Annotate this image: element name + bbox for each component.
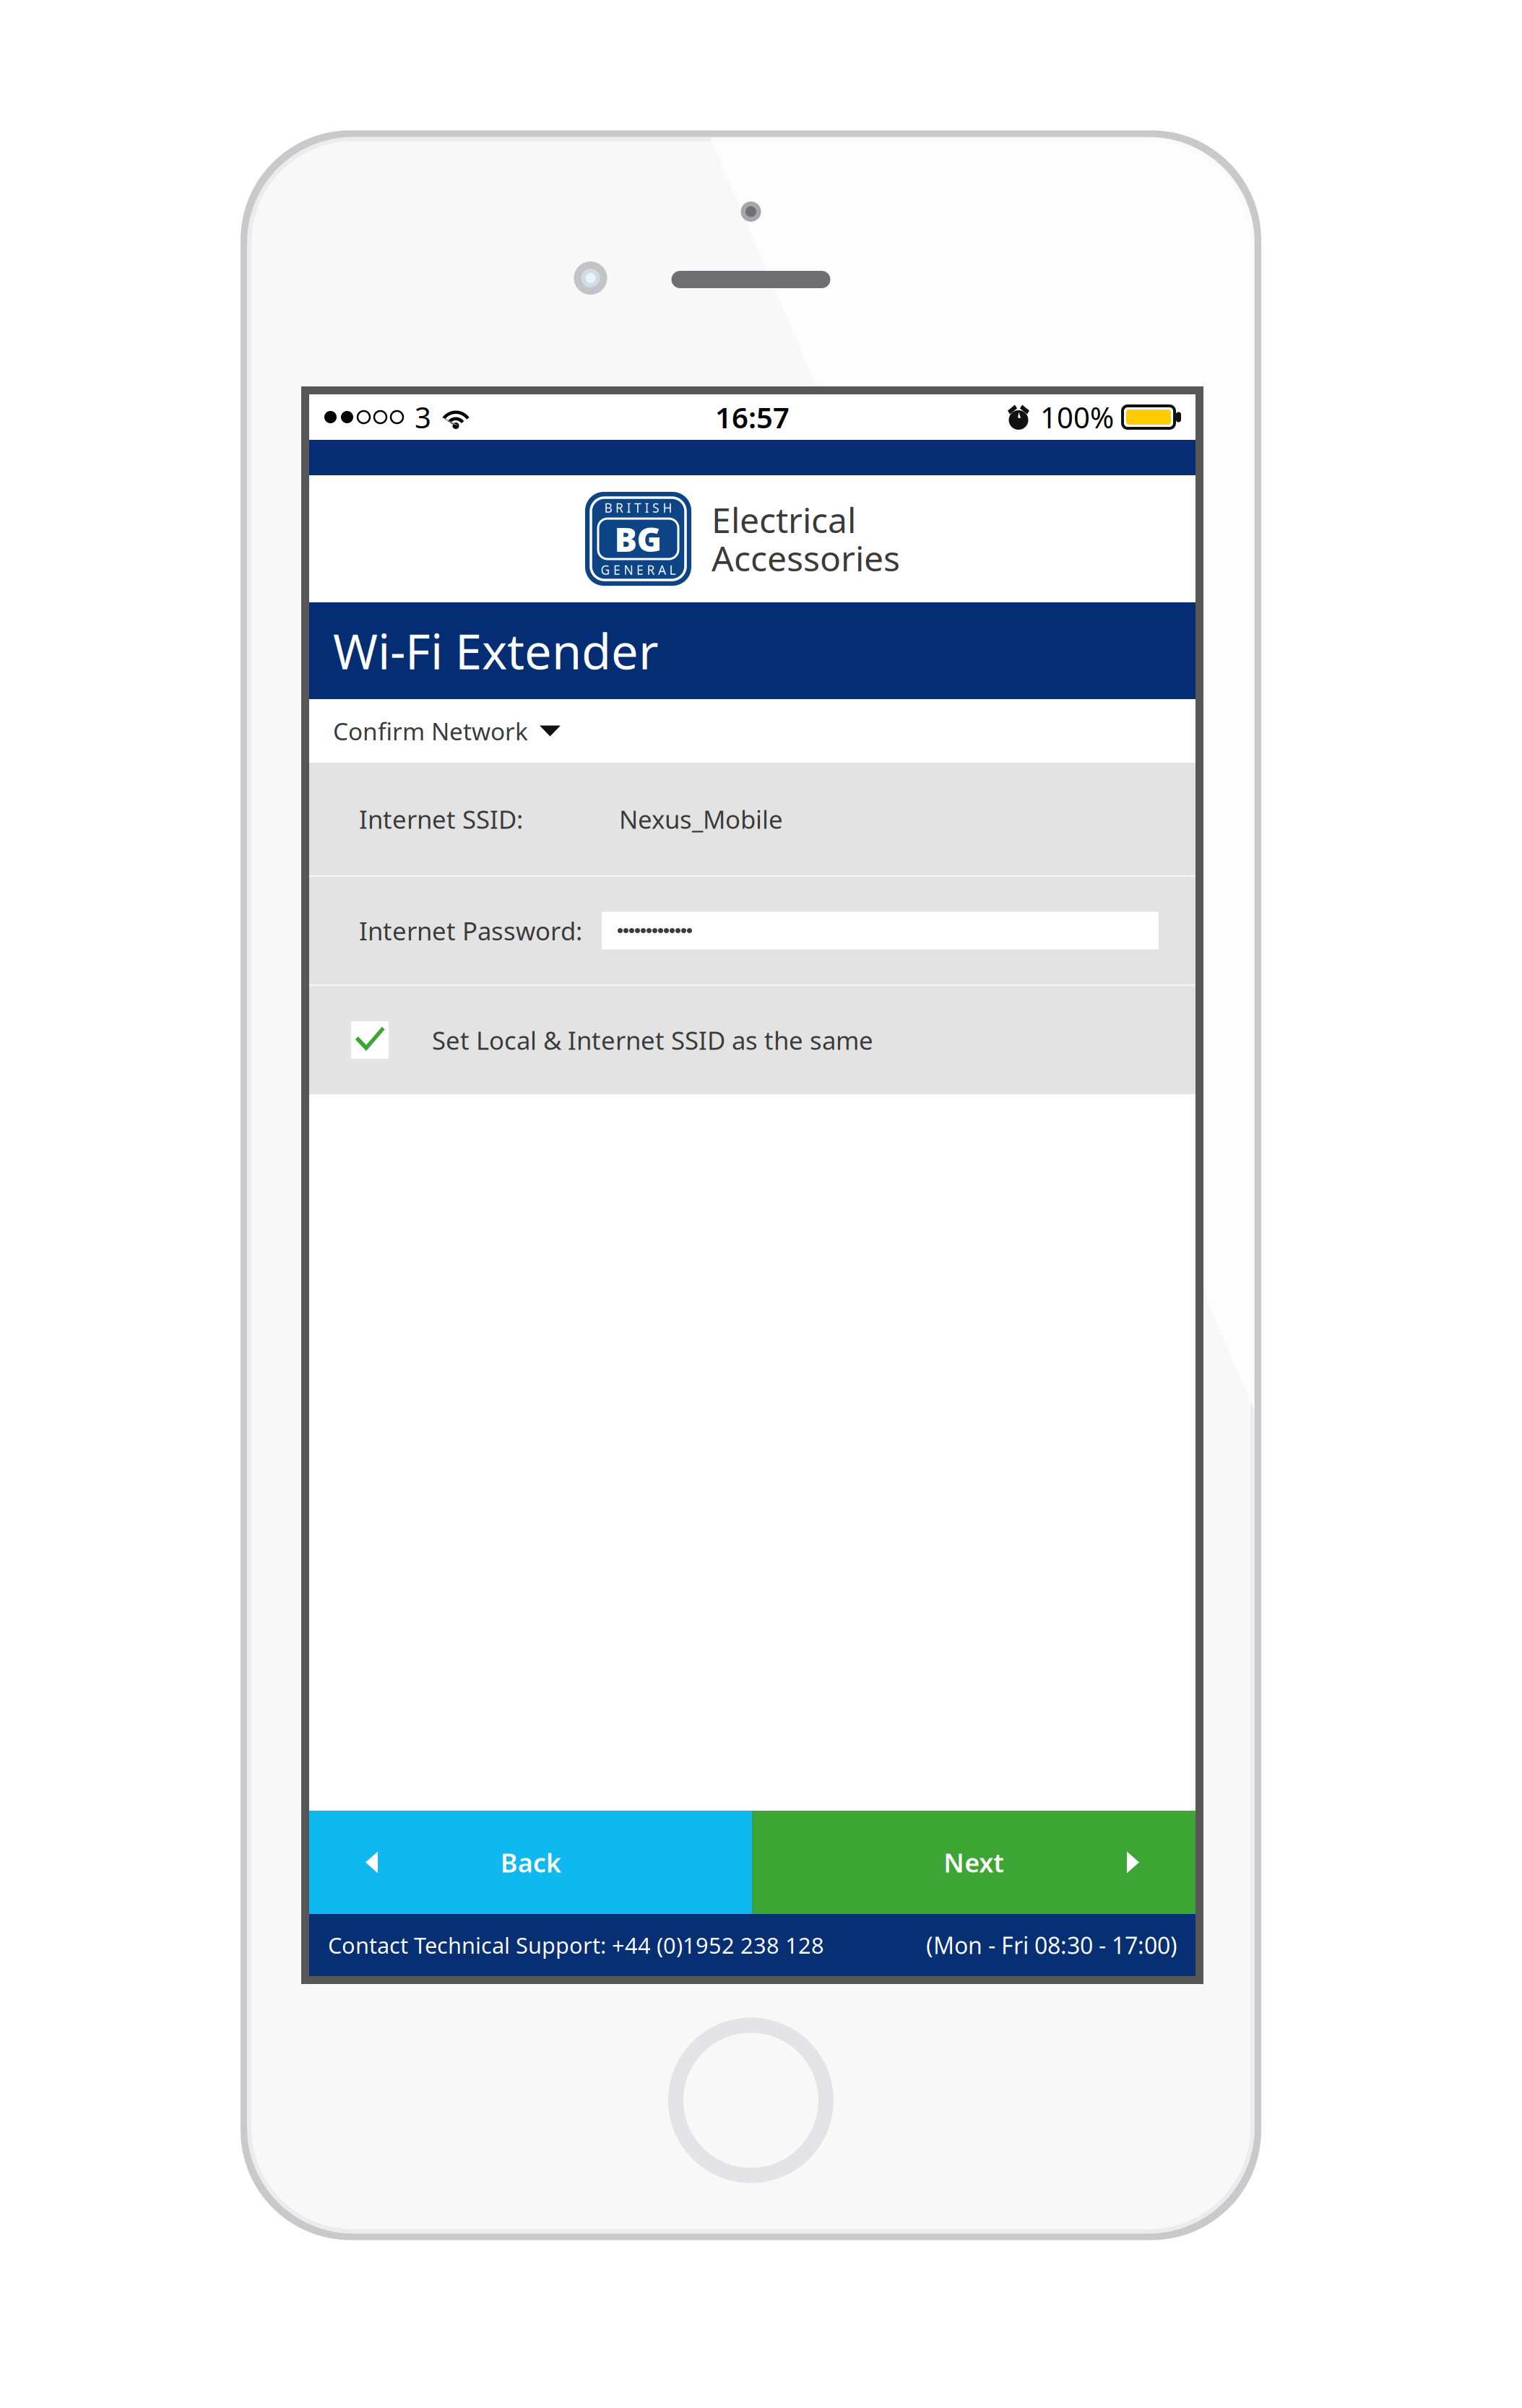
staticText: 3: [415, 398, 431, 436]
staticText: Wi-Fi Extender: [333, 619, 659, 683]
staticText: A: [658, 562, 666, 578]
staticText: Accessories: [712, 535, 900, 581]
staticText: Confirm Network: [333, 715, 528, 747]
staticText: H: [663, 499, 672, 516]
staticText: I: [645, 499, 649, 516]
button[interactable]: Next: [752, 1811, 1195, 1914]
staticText: Internet SSID:: [359, 802, 523, 836]
staticText: 100%: [1040, 398, 1114, 436]
staticText: Internet Password:: [359, 914, 582, 947]
staticText: I: [627, 499, 631, 516]
staticText: 16:57: [715, 398, 790, 436]
staticText: Contact Technical Support: +44 (0)1952 2…: [328, 1930, 824, 1960]
staticText: E: [636, 562, 644, 578]
staticText: N: [624, 562, 633, 578]
button[interactable]: Back: [309, 1811, 752, 1914]
button[interactable]: Set Local & Internet SSID as the same: [309, 986, 1195, 1094]
staticText: R: [647, 562, 655, 578]
staticText: E: [613, 562, 621, 578]
staticText: BG: [614, 516, 662, 561]
staticText: R: [615, 499, 623, 516]
staticText: Nexus_Mobile: [619, 802, 783, 836]
staticText: L: [669, 562, 676, 578]
button[interactable]: Confirm Network: [309, 699, 1195, 763]
staticText: Set Local & Internet SSID as the same: [432, 1023, 873, 1057]
staticText: Back: [500, 1845, 561, 1880]
staticText: B: [604, 499, 612, 516]
staticText: Electrical: [712, 497, 856, 543]
staticText: T: [634, 499, 641, 516]
button[interactable]: [602, 912, 1159, 949]
staticText: (Mon - Fri 08:30 - 17:00): [926, 1930, 1177, 1960]
staticText: Next: [944, 1845, 1004, 1880]
staticText: S: [652, 499, 660, 516]
staticText: G: [601, 562, 610, 578]
